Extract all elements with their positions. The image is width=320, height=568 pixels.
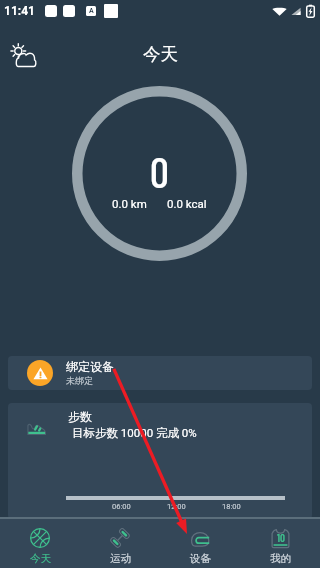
staticText: A — [89, 7, 94, 15]
staticText: 0 — [150, 146, 169, 196]
button[interactable]: 今天 — [0, 519, 80, 568]
staticText: 运动 — [110, 552, 131, 565]
staticText: 绑定设备 — [66, 359, 114, 374]
button[interactable]: 10 — [240, 519, 320, 568]
staticText: 06:00 — [112, 502, 131, 511]
staticText: 步数 — [68, 409, 92, 424]
button[interactable]: 步数 — [8, 403, 312, 519]
staticText: 18:00 — [222, 502, 241, 511]
staticText: 未绑定 — [66, 375, 93, 386]
staticText: 10 — [277, 531, 285, 544]
button[interactable]: Weather — [8, 39, 40, 71]
staticText: 设备 — [190, 552, 211, 565]
staticText: 11:41 — [4, 4, 35, 18]
staticText: 今天 — [30, 552, 51, 565]
staticText: 我的 — [270, 552, 291, 565]
button[interactable]: 运动 — [80, 519, 160, 568]
staticText: 0.0 kcal — [167, 197, 207, 210]
staticText: 0.0 km — [112, 197, 147, 210]
staticText: 今天 — [143, 43, 178, 65]
staticText: 目标步数 10000 完成 0% — [72, 426, 197, 440]
button[interactable]: 绑定设备 — [8, 356, 312, 390]
button[interactable]: 设备 — [160, 519, 240, 568]
staticText: 12:00 — [167, 502, 186, 511]
